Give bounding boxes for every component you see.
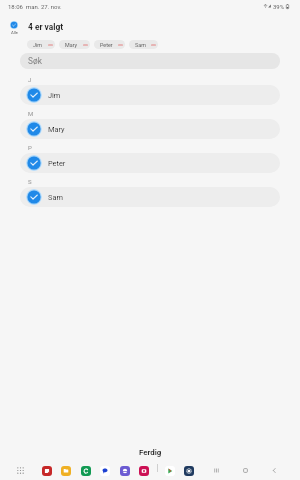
staticText: Mary: [65, 42, 78, 48]
staticText: J: [28, 76, 32, 83]
staticText: man. 27. nov.: [26, 3, 62, 10]
button[interactable]: Jim: [27, 40, 55, 49]
button[interactable]: Mary: [59, 40, 90, 49]
button[interactable]: Ferdig: [0, 445, 300, 460]
staticText: Sam: [48, 193, 63, 202]
staticText: Jim: [48, 91, 61, 100]
button[interactable]: Camera: [139, 466, 149, 476]
button[interactable]: Søk: [20, 53, 280, 69]
staticText: Mary: [48, 125, 65, 134]
button[interactable]: Sam: [129, 40, 158, 49]
staticText: Ferdig: [139, 448, 162, 457]
staticText: 4 er valgt: [28, 22, 64, 32]
staticText: 39%: [273, 3, 285, 10]
button[interactable]: Home: [241, 466, 250, 475]
button[interactable]: Sam: [20, 187, 280, 207]
button[interactable]: Alle: [9, 20, 19, 36]
button[interactable]: Office: [42, 466, 52, 476]
staticText: M: [28, 110, 34, 117]
button[interactable]: Peter: [94, 40, 125, 49]
button[interactable]: Recent apps: [212, 466, 221, 475]
staticText: 18:06: [8, 3, 23, 10]
button[interactable]: Play Store: [165, 466, 175, 476]
staticText: Peter: [100, 42, 113, 48]
button[interactable]: Mary: [20, 119, 280, 139]
button[interactable]: Settings: [184, 466, 194, 476]
staticText: Sam: [135, 42, 146, 48]
button[interactable]: Jim: [20, 85, 280, 105]
button[interactable]: Files: [61, 466, 71, 476]
button[interactable]: Peter: [20, 153, 280, 173]
staticText: Peter: [48, 159, 66, 168]
staticText: P: [28, 144, 32, 151]
staticText: Jim: [33, 42, 43, 48]
button[interactable]: Back: [270, 466, 279, 475]
staticText: S: [28, 178, 32, 185]
button[interactable]: Messages: [100, 466, 110, 476]
staticText: Søk: [28, 56, 42, 66]
button[interactable]: All apps: [17, 467, 24, 474]
button[interactable]: Contacts: [81, 466, 91, 476]
button[interactable]: Samsung Internet: [120, 466, 130, 476]
staticText: Alle: [11, 30, 18, 35]
